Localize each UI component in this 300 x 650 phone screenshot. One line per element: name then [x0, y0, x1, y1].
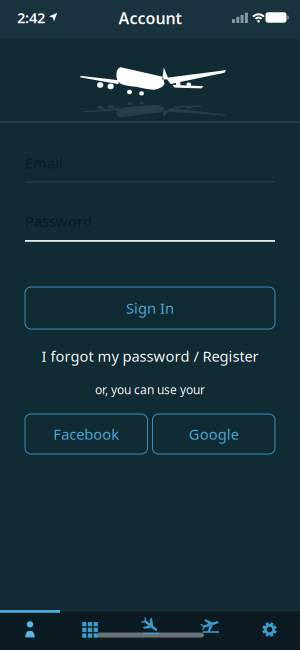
button[interactable]: Google: [152, 414, 275, 454]
staticText: Password: [25, 211, 92, 231]
button[interactable]: Password: [25, 204, 275, 242]
staticText: Account: [118, 7, 181, 29]
staticText: Facebook: [53, 424, 119, 444]
staticText: 2:42: [17, 8, 45, 27]
button[interactable]: Arrivals: [120, 610, 180, 650]
button[interactable]: I forgot my password / Register: [41, 346, 258, 366]
staticText: Email: [25, 153, 63, 172]
button[interactable]: Facebook: [25, 414, 147, 454]
staticText: I forgot my password / Register: [41, 346, 258, 366]
button[interactable]: Sign In: [25, 287, 275, 329]
button[interactable]: Settings: [240, 610, 300, 650]
button[interactable]: Account: [0, 610, 60, 650]
staticText: Google: [189, 424, 239, 444]
button[interactable]: Email: [25, 145, 275, 182]
button[interactable]: Departures: [180, 610, 240, 650]
button[interactable]: More: [60, 610, 120, 650]
staticText: or, you can use your: [95, 381, 205, 397]
staticText: Sign In: [126, 298, 174, 318]
